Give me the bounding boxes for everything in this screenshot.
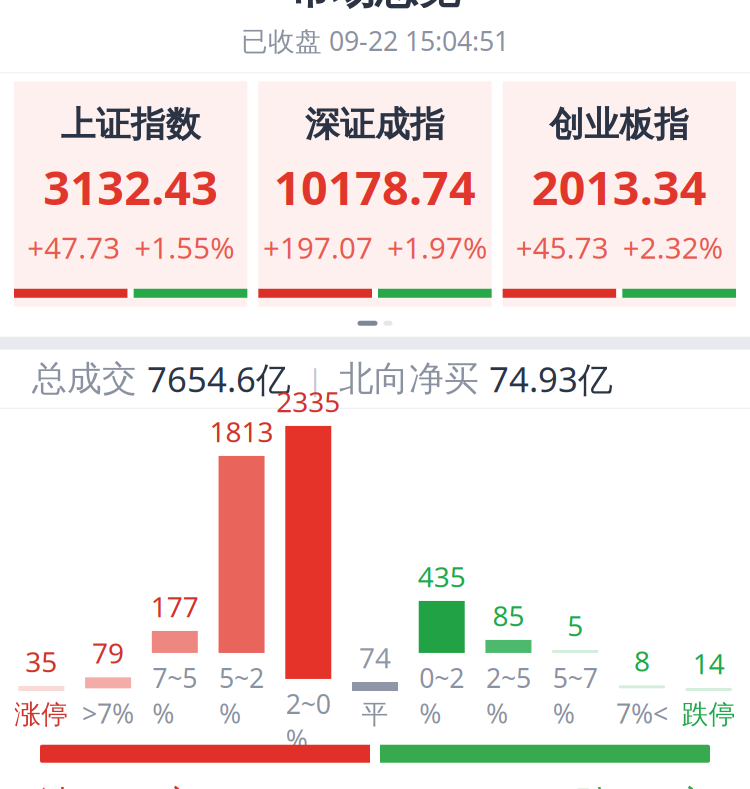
staticText: 7%<: [616, 695, 668, 731]
staticText: 79: [92, 634, 124, 671]
staticText: 2~0%: [286, 686, 331, 757]
staticText: 总成交: [32, 357, 147, 400]
staticText: 2013.34: [532, 156, 707, 218]
staticText: 435: [418, 558, 466, 595]
staticText: 5: [567, 607, 583, 644]
staticText: 北向净买: [339, 357, 489, 400]
staticText: +197.07: [263, 228, 373, 267]
staticText: 涨4439家: [40, 779, 196, 789]
staticText: 跌547家: [575, 779, 710, 789]
staticText: >7%: [82, 695, 134, 731]
staticText: +47.73: [27, 228, 120, 267]
staticText: 已收盘 09-22 15:04:51: [241, 23, 509, 58]
staticText: 平: [361, 698, 388, 731]
staticText: 74: [359, 639, 391, 676]
staticText: +45.73: [516, 228, 609, 267]
staticText: 177: [151, 588, 199, 625]
staticText: 3132.43: [43, 156, 218, 218]
staticText: 深证成指: [305, 103, 445, 146]
staticText: +2.32%: [623, 228, 723, 267]
button[interactable]: 深证成指: [258, 81, 492, 307]
staticText: 涨停: [14, 698, 68, 731]
staticText: 14: [693, 645, 725, 682]
staticText: 10178.74: [274, 156, 476, 218]
staticText: +1.55%: [134, 228, 234, 267]
staticText: 35: [25, 643, 57, 680]
staticText: |: [291, 359, 339, 398]
staticText: 5~2%: [219, 660, 264, 731]
staticText: 1813: [209, 413, 273, 450]
staticText: 0~2%: [419, 660, 464, 731]
staticText: 7654.6亿: [147, 356, 291, 402]
staticText: 74.93亿: [489, 356, 613, 402]
staticText: +1.97%: [387, 228, 487, 267]
staticText: 85: [492, 597, 524, 634]
staticText: 市场总览: [289, 0, 461, 15]
staticText: 创业板指: [549, 103, 689, 146]
staticText: 5~7%: [553, 660, 598, 731]
button[interactable]: 总成交: [0, 350, 750, 408]
staticText: 2~5%: [486, 660, 531, 731]
staticText: 7~5%: [152, 660, 197, 731]
button[interactable]: 上证指数: [14, 81, 247, 307]
staticText: 8: [634, 642, 650, 679]
staticText: 上证指数: [61, 103, 201, 146]
staticText: 2335: [276, 383, 340, 420]
staticText: 跌停: [682, 698, 736, 731]
button[interactable]: 创业板指: [503, 81, 736, 307]
